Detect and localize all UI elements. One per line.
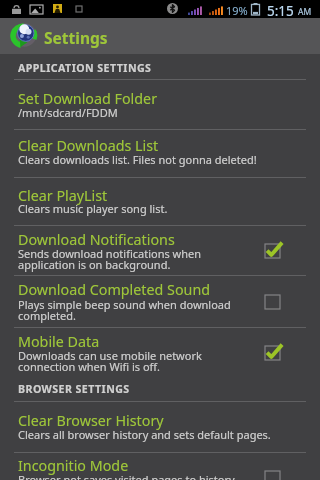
button[interactable]: Unchecked <box>265 471 280 480</box>
button[interactable]: Mobile Data <box>0 328 320 378</box>
staticText: /mnt/sdcard/FDDM <box>18 105 118 120</box>
staticText: Clear PlayList <box>18 186 108 205</box>
staticText: 19% <box>226 3 248 18</box>
button[interactable]: Checked <box>265 244 280 258</box>
button[interactable]: Settings <box>0 18 320 54</box>
staticText: Download Completed Sound <box>18 280 211 299</box>
staticText: Sends download notifications when applic… <box>18 246 202 272</box>
staticText: Clears music player song list. <box>18 201 168 216</box>
button[interactable]: Incognitio Mode <box>0 453 320 480</box>
staticText: Mobile Data <box>18 332 100 351</box>
button[interactable]: Checked <box>265 346 280 360</box>
staticText: Clear Browser History <box>18 411 164 430</box>
button[interactable]: Clear Downloads List <box>0 130 320 178</box>
staticText: Clears all browser history and sets defa… <box>18 427 271 442</box>
staticText: Clears downloads list. Files not gonna d… <box>18 152 257 167</box>
staticText: Clear Downloads List <box>18 136 159 155</box>
staticText: Downloads can use mobile network connect… <box>18 348 202 374</box>
staticText: BROWSER SETTINGS <box>18 382 130 396</box>
button[interactable]: Download Completed Sound <box>0 276 320 328</box>
button[interactable]: Unchecked <box>265 295 280 309</box>
button[interactable]: Set Download Folder <box>0 80 320 130</box>
staticText: Plays simple beep sound when download co… <box>18 297 231 323</box>
staticText: Browser not saves visited pages to histo… <box>18 472 238 480</box>
button[interactable]: Clear PlayList <box>0 178 320 226</box>
staticText: Incognitio Mode <box>18 456 129 475</box>
button[interactable]: Download Notifications <box>0 226 320 276</box>
staticText: APPLICATION SETTINGS <box>18 61 152 75</box>
staticText: AM <box>298 6 312 18</box>
staticText: Settings <box>44 27 108 48</box>
staticText: Set Download Folder <box>18 89 158 108</box>
staticText: 5:15 <box>267 2 294 20</box>
button[interactable]: Clear Browser History <box>0 402 320 453</box>
staticText: Download Notifications <box>18 230 175 249</box>
